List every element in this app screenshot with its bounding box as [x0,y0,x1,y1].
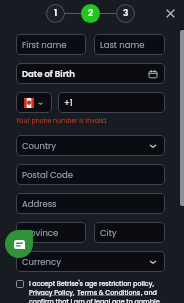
staticText: City [100,227,117,239]
button[interactable]: Open chat support [5,230,33,258]
staticText: , [73,288,77,297]
staticText: Date of Birth [22,68,75,80]
staticText: Your phone number is invalid [16,116,107,125]
staticText: I accept Betrise's age restriction polic… [29,279,154,288]
staticText: Province [22,227,59,239]
button[interactable]: Close [163,6,178,21]
button[interactable]: Accept terms and conditions [16,280,24,288]
staticText: confirm that I am of legal age to gamble… [29,297,162,303]
button[interactable]: City [94,222,165,243]
button[interactable]: Postal Code [16,164,165,185]
staticText: 3 [123,7,129,20]
staticText: Address [22,198,57,210]
staticText: Currency [22,256,61,268]
staticText: Country [22,140,56,152]
staticText: , and [141,288,157,297]
button[interactable]: Privacy Policy [29,288,73,297]
staticText: Postal Code [22,169,74,181]
button[interactable]: Address [16,193,165,214]
button[interactable]: Terms & Conditions [77,288,141,297]
staticText: 2 [88,7,94,20]
button[interactable]: Country [16,135,165,156]
button[interactable]: First name [16,34,86,55]
staticText: Last name [100,39,145,51]
staticText: 1 [54,7,58,20]
button[interactable]: 2 [81,4,100,23]
button[interactable]: Date of Birth [16,63,165,84]
staticText: +1 [64,97,73,109]
button[interactable]: 3 [116,4,135,23]
button[interactable]: 1 [46,4,65,23]
button[interactable]: +1 [58,92,165,113]
staticText: First name [22,39,67,51]
button[interactable]: Select country code [16,92,52,113]
button[interactable]: Currency [16,251,165,272]
button[interactable]: Province [16,222,86,243]
button[interactable]: Last name [94,34,165,55]
